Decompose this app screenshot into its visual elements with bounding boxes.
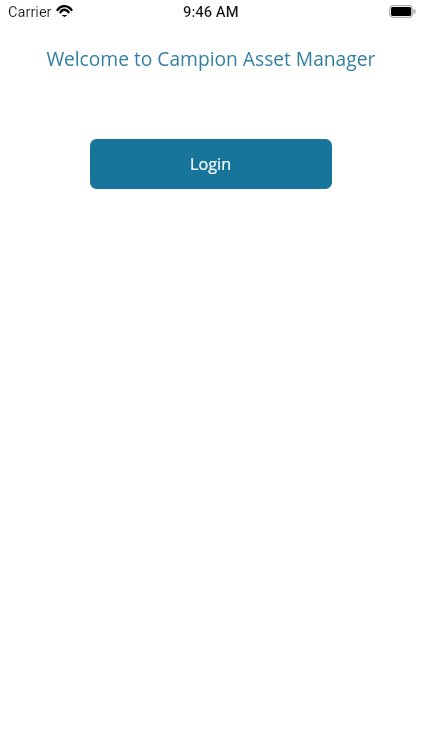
other: Wi-Fi signal [55, 4, 74, 17]
staticText: 9:46 AM [183, 3, 239, 20]
staticText: Welcome to Campion Asset Manager [0, 45, 422, 71]
button[interactable]: Login [90, 139, 332, 189]
staticText: Login [190, 153, 232, 175]
other: Battery full [389, 5, 416, 18]
staticText: Carrier [8, 3, 52, 20]
